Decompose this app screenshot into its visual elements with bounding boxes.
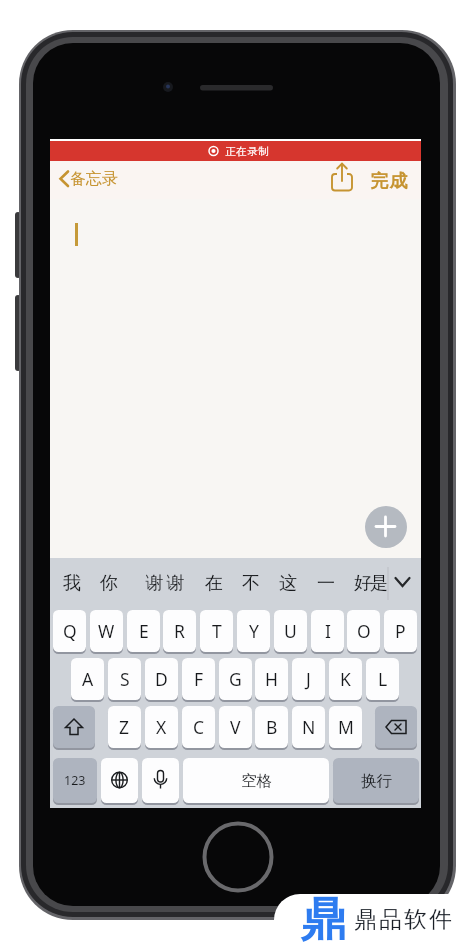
button[interactable]: 换行 xyxy=(333,758,419,803)
staticText: 鼎品软件 xyxy=(353,905,453,933)
staticText: M xyxy=(338,715,354,739)
staticText: P xyxy=(395,619,406,643)
staticText: J xyxy=(306,667,311,691)
button[interactable]: Z xyxy=(108,706,141,748)
staticText: S xyxy=(120,667,130,691)
staticText: 这 xyxy=(279,572,297,595)
button[interactable]: U xyxy=(274,610,307,652)
button[interactable]: 空格 xyxy=(183,758,329,803)
staticText: 鼎 xyxy=(300,891,346,948)
staticText: 好 xyxy=(354,572,372,595)
staticText: I xyxy=(325,619,331,643)
button[interactable]: V xyxy=(219,706,252,748)
staticText: K xyxy=(340,667,351,691)
button[interactable]: R xyxy=(163,610,196,652)
staticText: X xyxy=(156,715,167,739)
staticText: Q xyxy=(63,619,77,643)
staticText: Y xyxy=(249,619,259,643)
staticText: 不 xyxy=(242,572,260,595)
button[interactable]: K xyxy=(329,658,362,700)
button[interactable]: A xyxy=(71,658,104,700)
button[interactable]: P xyxy=(384,610,417,652)
button[interactable]: B xyxy=(255,706,288,748)
button[interactable]: 好 xyxy=(350,566,376,600)
button[interactable]: O xyxy=(347,610,380,652)
staticText: L xyxy=(378,667,388,691)
button[interactable]: W xyxy=(90,610,123,652)
staticText: 完成 xyxy=(370,170,408,190)
button[interactable] xyxy=(142,758,179,803)
staticText: 谢谢 xyxy=(144,572,186,595)
button[interactable]: S xyxy=(108,658,141,700)
staticText: R xyxy=(174,619,185,643)
button[interactable]: 谢谢 xyxy=(143,566,187,600)
button[interactable]: G xyxy=(219,658,252,700)
button[interactable]: X xyxy=(145,706,178,748)
staticText: 我 xyxy=(63,572,81,595)
button[interactable] xyxy=(328,161,356,193)
staticText: D xyxy=(155,667,168,691)
button[interactable]: Y xyxy=(237,610,270,652)
button[interactable] xyxy=(375,706,417,748)
button[interactable] xyxy=(365,506,407,548)
button[interactable]: N xyxy=(292,706,325,748)
button[interactable]: 在 xyxy=(201,566,227,600)
button[interactable] xyxy=(50,141,421,161)
button[interactable]: J xyxy=(292,658,325,700)
staticText: V xyxy=(230,715,241,739)
button[interactable]: 一 xyxy=(313,566,339,600)
button[interactable]: L xyxy=(366,658,399,700)
staticText: G xyxy=(229,667,242,691)
staticText: U xyxy=(284,619,297,643)
staticText: F xyxy=(194,667,204,691)
button[interactable]: 完成 xyxy=(369,170,408,190)
button[interactable]: 不 xyxy=(238,566,264,600)
staticText: Z xyxy=(119,715,130,739)
button[interactable]: D xyxy=(145,658,178,700)
staticText: H xyxy=(265,667,278,691)
button[interactable]: E xyxy=(127,610,160,652)
button[interactable]: F xyxy=(182,658,215,700)
staticText: B xyxy=(266,715,278,739)
button[interactable] xyxy=(274,894,476,948)
button[interactable]: 123 xyxy=(53,758,97,803)
button[interactable]: 我 xyxy=(59,566,85,600)
button[interactable] xyxy=(101,758,138,803)
staticText: 是 xyxy=(370,572,388,595)
staticText: 你 xyxy=(100,572,118,595)
staticText: W xyxy=(98,619,115,643)
button[interactable]: H xyxy=(255,658,288,700)
staticText: 在 xyxy=(205,572,223,595)
button[interactable]: T xyxy=(200,610,233,652)
button[interactable]: C xyxy=(182,706,215,748)
staticText: 备忘录 xyxy=(70,169,118,189)
staticText: 换行 xyxy=(361,771,392,791)
button[interactable]: M xyxy=(329,706,362,748)
button[interactable]: I xyxy=(311,610,344,652)
button[interactable]: 备忘录 xyxy=(69,168,119,189)
button[interactable]: Q xyxy=(53,610,86,652)
button[interactable]: 是 xyxy=(368,566,390,600)
staticText: 123 xyxy=(64,772,86,789)
staticText: N xyxy=(302,715,316,739)
staticText: T xyxy=(212,619,222,643)
staticText: O xyxy=(357,619,371,643)
button[interactable]: 这 xyxy=(275,566,301,600)
staticText: A xyxy=(82,667,94,691)
staticText: C xyxy=(193,715,205,739)
button[interactable]: 你 xyxy=(96,566,122,600)
staticText: 正在录制 xyxy=(225,145,269,158)
staticText: 一 xyxy=(317,572,335,595)
button[interactable] xyxy=(53,706,95,748)
staticText: 空格 xyxy=(241,771,272,791)
staticText: E xyxy=(139,619,149,643)
